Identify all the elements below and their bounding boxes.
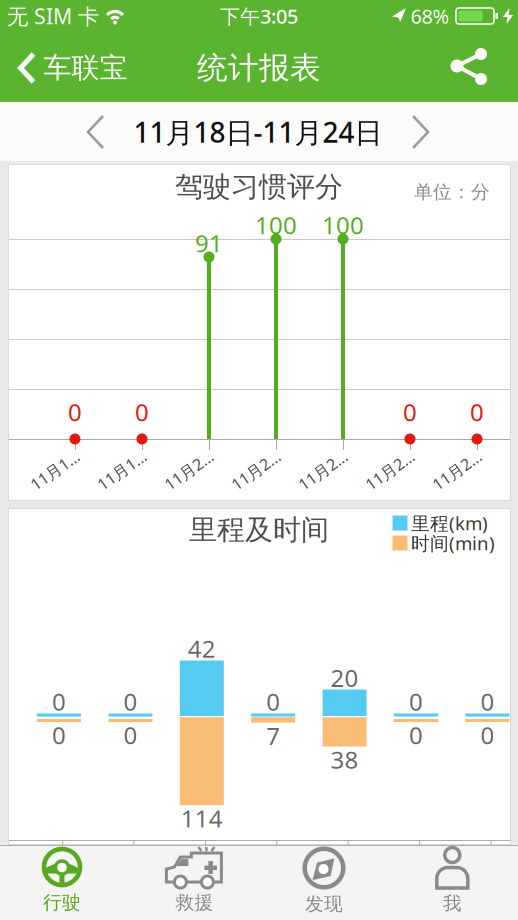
staticText: 0 xyxy=(68,396,82,428)
staticText: 114 xyxy=(181,802,223,834)
button[interactable]: 救援 xyxy=(130,844,258,916)
button[interactable]: 行驶 xyxy=(0,844,126,916)
staticText: 0 xyxy=(123,719,137,751)
staticText: 时间(min) xyxy=(411,531,495,555)
staticText: 单位：分 xyxy=(414,180,490,203)
staticText: 我 xyxy=(443,892,462,915)
staticText: 11月1… xyxy=(94,459,150,481)
staticText: 38 xyxy=(331,744,359,775)
staticText: 0 xyxy=(135,396,149,428)
staticText: 91 xyxy=(195,227,223,259)
staticText: 11月2… xyxy=(161,459,217,481)
staticText: 车联宝 xyxy=(43,51,127,85)
staticText: 0 xyxy=(266,686,280,717)
staticText: 11月2… xyxy=(362,459,418,481)
staticText: 11月2… xyxy=(429,459,485,481)
staticText: 100 xyxy=(322,209,364,241)
staticText: 0 xyxy=(52,719,66,751)
staticText: 0 xyxy=(409,719,423,751)
staticText: 20 xyxy=(331,662,359,694)
staticText: 0 xyxy=(123,686,137,717)
staticText: 11月1… xyxy=(27,459,83,481)
staticText: 11月2… xyxy=(228,459,284,481)
staticText: 11月2… xyxy=(295,459,351,481)
staticText: 0 xyxy=(409,686,423,717)
staticText: 0 xyxy=(480,686,494,717)
staticText: 救援 xyxy=(175,891,213,914)
staticText: 0 xyxy=(470,396,484,428)
staticText: 68% xyxy=(410,3,449,29)
button[interactable] xyxy=(401,104,441,160)
staticText: 11月18日-11月24日 xyxy=(133,113,382,151)
staticText: 里程及时间 xyxy=(189,513,329,547)
staticText: 无 SIM 卡 xyxy=(7,2,99,30)
staticText: 100 xyxy=(255,209,297,241)
staticText: 里程(km) xyxy=(411,511,488,535)
staticText: 驾驶习惯评分 xyxy=(175,170,343,204)
staticText: 行驶 xyxy=(43,891,81,914)
staticText: 0 xyxy=(480,719,494,751)
button[interactable] xyxy=(446,44,494,88)
staticText: 0 xyxy=(403,396,417,428)
button[interactable]: 我 xyxy=(388,844,516,916)
staticText: 42 xyxy=(188,633,216,664)
staticText: 下午3:05 xyxy=(220,3,298,29)
staticText: 发现 xyxy=(305,892,343,915)
staticText: 统计报表 xyxy=(197,49,321,87)
button[interactable]: 发现 xyxy=(260,845,388,917)
staticText: 7 xyxy=(266,720,280,752)
staticText: 0 xyxy=(52,686,66,717)
button[interactable]: 车联宝 xyxy=(14,46,134,90)
button[interactable] xyxy=(76,104,116,160)
